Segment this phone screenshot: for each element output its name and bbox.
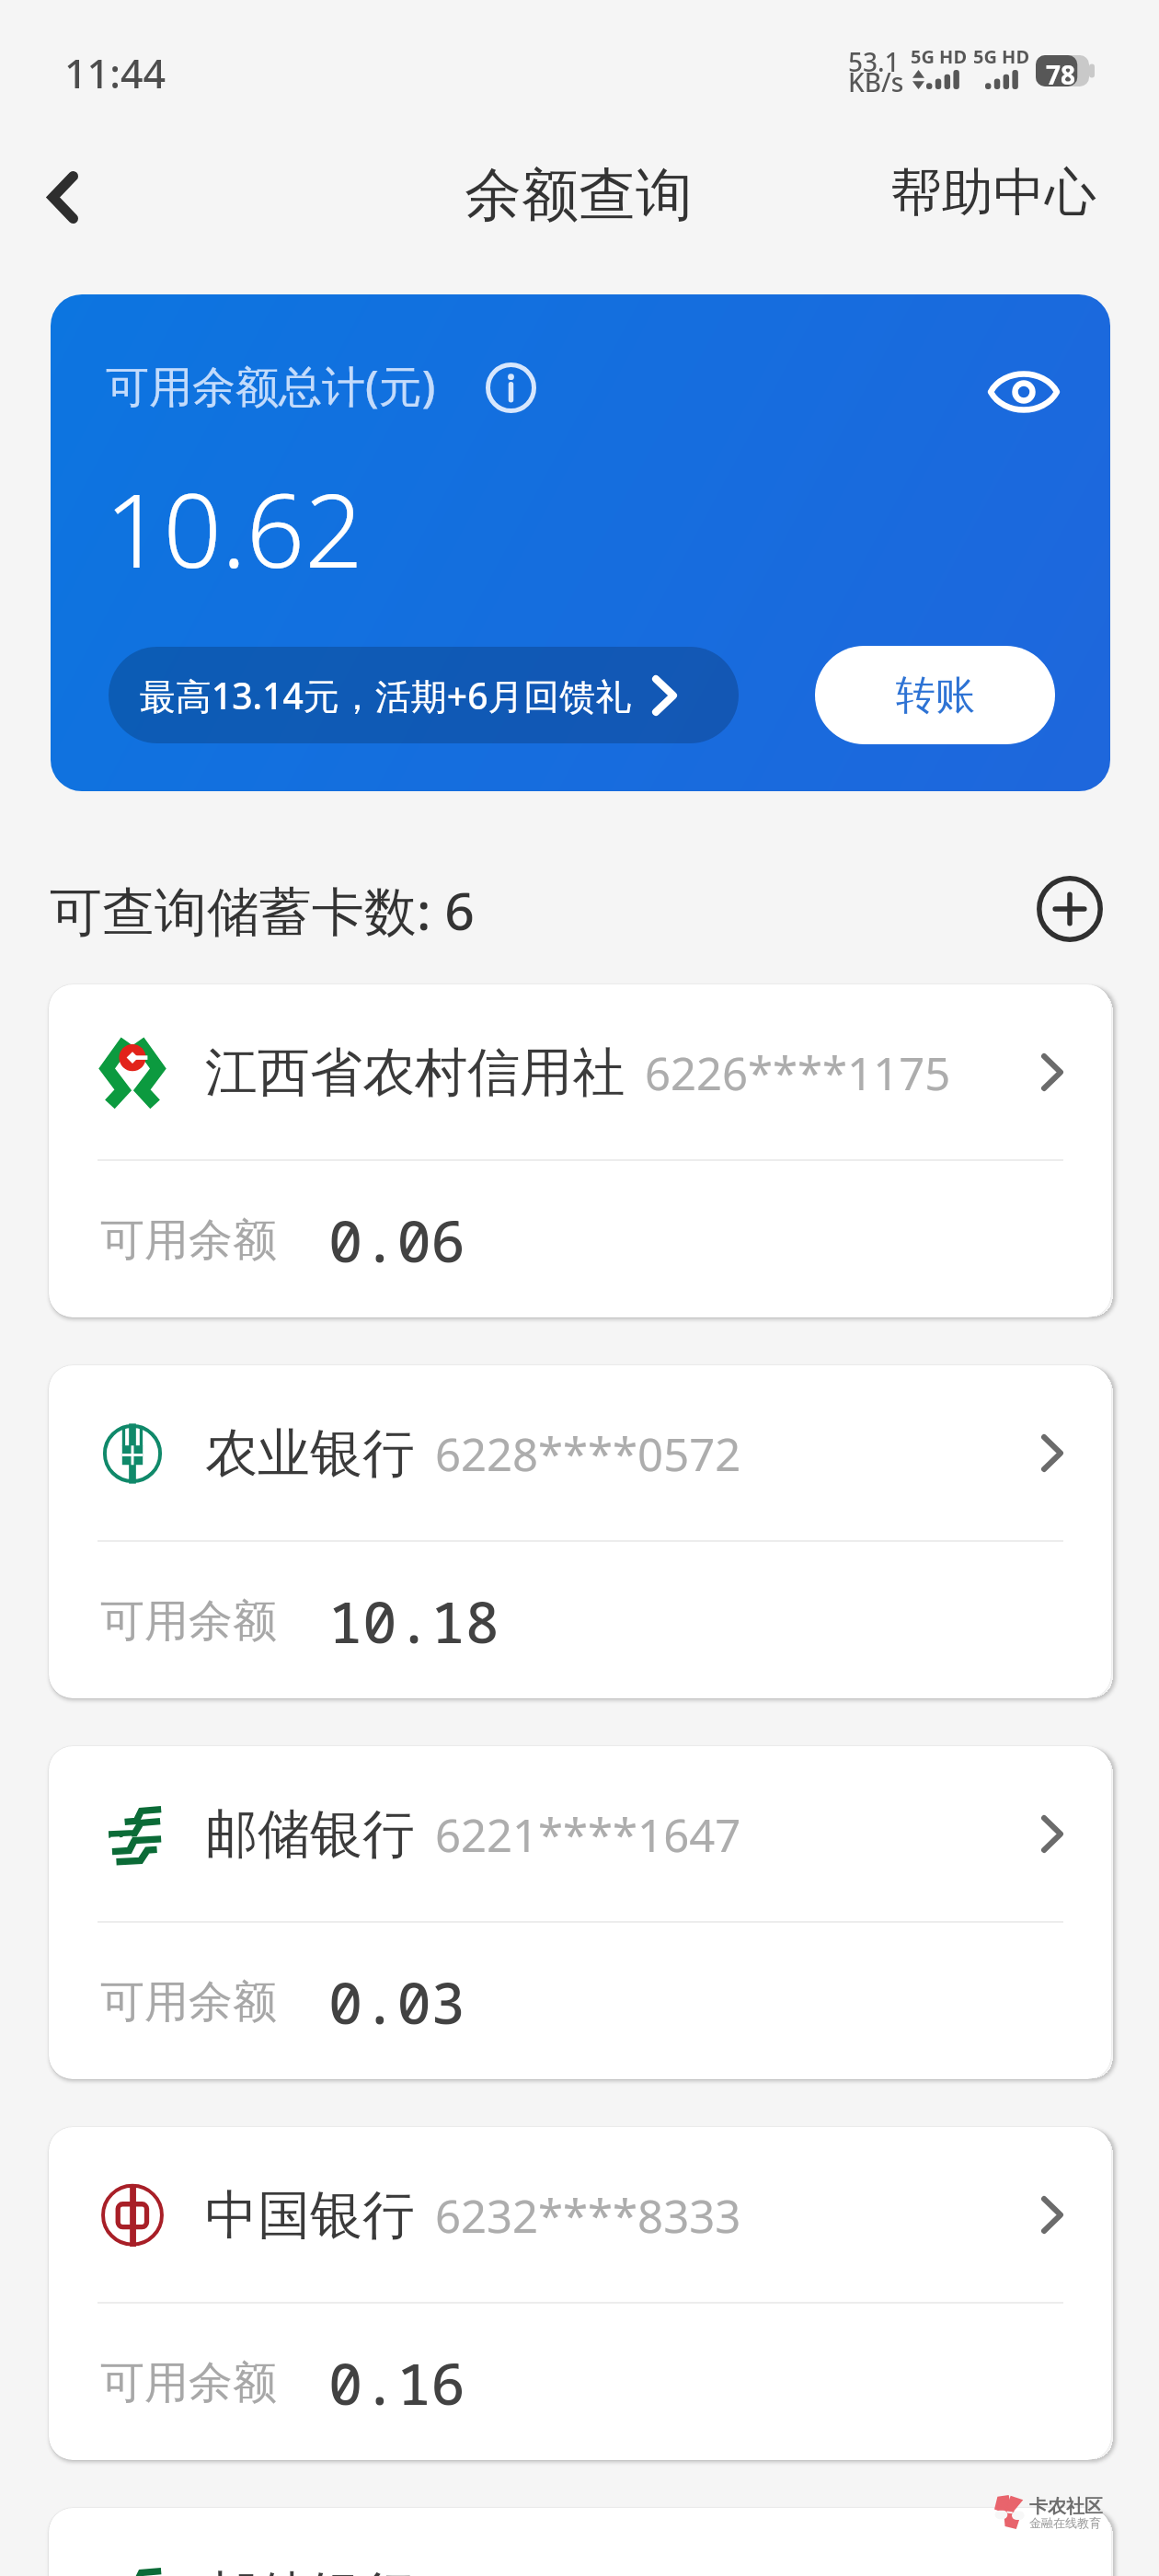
staticText: 6228****0572 — [435, 1423, 741, 1485]
staticText: 可用余额总计(元) — [106, 356, 436, 415]
staticText: 转账 — [896, 671, 975, 720]
staticText: 江西省农村信用社 — [205, 1040, 625, 1106]
staticText: 余额查询 — [465, 159, 693, 231]
button[interactable]: 可用余额总计(元) — [51, 294, 1110, 791]
staticText: 53.1 — [848, 44, 900, 79]
staticText: 帮助中心 — [890, 160, 1096, 225]
staticText: 6221****1647 — [435, 1804, 741, 1866]
staticText: 可用余额 — [100, 1974, 277, 2030]
staticText: 10.62 — [105, 458, 363, 597]
staticText: 邮储银行 — [205, 1801, 415, 1868]
staticText: 0.16 — [328, 2344, 465, 2421]
button[interactable]: 江西省农村信用社 — [49, 984, 1111, 1317]
staticText: 金融在线教育 — [1029, 2515, 1101, 2530]
staticText: 0.03 — [328, 1963, 465, 2041]
staticText: 最高13.14元，活期+6月回馈礼 — [140, 671, 632, 719]
staticText: 邮储银行 — [205, 2563, 415, 2576]
staticText: 农业银行 — [205, 1420, 415, 1487]
staticText: 10.18 — [328, 1582, 500, 1660]
staticText: 可用余额 — [100, 1213, 277, 1268]
button[interactable]: 邮储银行 — [49, 1746, 1111, 2079]
button[interactable]: Add card — [1037, 876, 1103, 942]
button[interactable]: Toggle balance visibility — [987, 364, 1061, 420]
staticText: 6232****8333 — [435, 2185, 741, 2247]
staticText: 5G HD — [973, 44, 1030, 69]
button[interactable]: 帮助中心 — [872, 145, 1115, 240]
staticText: 0.06 — [328, 1202, 465, 1279]
staticText: 卡农社区 — [1029, 2495, 1103, 2518]
staticText: 11:44 — [64, 46, 166, 100]
staticText: KB/s — [848, 64, 904, 99]
button[interactable]: 转账 — [815, 646, 1055, 744]
staticText: 可用余额 — [100, 1593, 277, 1649]
button[interactable]: 中国银行 — [49, 2127, 1111, 2460]
staticText: 5G HD — [911, 44, 968, 69]
button[interactable]: 邮储银行 — [49, 2508, 1111, 2576]
staticText: 可查询储蓄卡数: 6 — [50, 874, 475, 946]
staticText: 78 — [1046, 57, 1076, 92]
staticText: 可用余额 — [100, 2355, 277, 2410]
button[interactable]: 最高13.14元，活期+6月回馈礼 — [109, 647, 739, 743]
staticText: 中国银行 — [205, 2182, 415, 2248]
staticText: 6226****1175 — [645, 1042, 951, 1104]
button[interactable]: Back — [18, 153, 107, 241]
button[interactable]: 农业银行 — [49, 1365, 1111, 1698]
